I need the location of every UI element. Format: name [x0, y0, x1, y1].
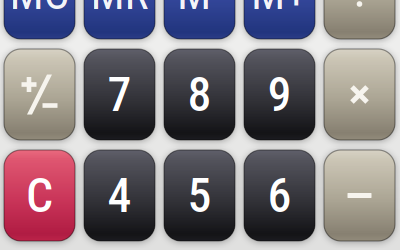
- staticText: 8: [187, 66, 211, 123]
- staticText: 4: [107, 167, 131, 224]
- staticText: MR: [90, 0, 148, 20]
- button[interactable]: [324, 0, 395, 39]
- staticText: 9: [267, 66, 291, 123]
- staticText: 5: [187, 167, 211, 224]
- button[interactable]: 7: [84, 49, 155, 140]
- button[interactable]: 4: [84, 150, 155, 241]
- staticText: MC: [9, 0, 69, 20]
- button[interactable]: 6: [244, 150, 315, 241]
- button[interactable]: 9: [244, 49, 315, 140]
- button[interactable]: M-: [164, 0, 235, 39]
- staticText: M+: [251, 0, 308, 20]
- staticText: C: [26, 167, 53, 224]
- button[interactable]: [324, 49, 395, 140]
- button[interactable]: MC: [4, 0, 75, 39]
- button[interactable]: 5: [164, 150, 235, 241]
- button[interactable]: M+: [244, 0, 315, 39]
- button[interactable]: MR: [84, 0, 155, 39]
- button[interactable]: [4, 49, 75, 140]
- button[interactable]: [324, 150, 395, 241]
- staticText: 7: [107, 66, 131, 123]
- staticText: M-: [177, 0, 222, 20]
- button[interactable]: 8: [164, 49, 235, 140]
- button[interactable]: C: [4, 150, 75, 241]
- staticText: 6: [267, 167, 291, 224]
